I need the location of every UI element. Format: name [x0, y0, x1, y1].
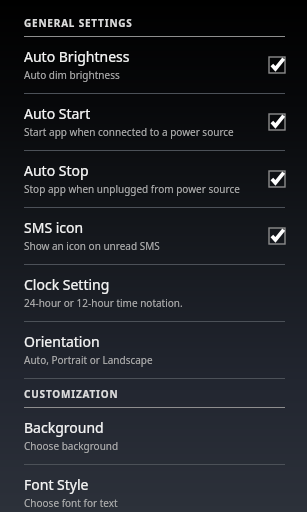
button[interactable]: Background [0, 408, 307, 465]
staticText: 24-hour or 12-hour time notation. [24, 296, 183, 310]
button[interactable]: Clock Setting [0, 265, 307, 322]
staticText: Choose font for text [24, 496, 118, 510]
staticText: Auto dim brightness [24, 68, 120, 82]
staticText: Show an icon on unread SMS [24, 239, 160, 253]
staticText: Choose background [24, 439, 119, 453]
staticText: Background [24, 418, 104, 437]
other: Toggle setting [268, 56, 286, 74]
other: Toggle setting [268, 227, 286, 245]
button[interactable]: Font Style [0, 465, 307, 512]
other: Toggle setting [268, 113, 286, 131]
button[interactable]: Auto Start [0, 94, 307, 151]
staticText: Auto Brightness [24, 47, 130, 66]
staticText: Clock Setting [24, 275, 110, 294]
staticText: SMS icon [24, 218, 84, 237]
button[interactable]: Orientation [0, 322, 307, 379]
other: Toggle setting [268, 170, 286, 188]
staticText: GENERAL SETTINGS [24, 16, 133, 30]
staticText: Start app when connected to a power sour… [24, 125, 234, 139]
staticText: Orientation [24, 332, 100, 351]
staticText: Auto, Portrait or Landscape [24, 353, 153, 367]
staticText: Auto Stop [24, 161, 89, 180]
staticText: Font Style [24, 475, 89, 494]
staticText: CUSTOMIZATION [24, 387, 119, 401]
staticText: Auto Start [24, 104, 91, 123]
staticText: Stop app when unplugged from power sourc… [24, 182, 240, 196]
button[interactable]: SMS icon [0, 208, 307, 265]
button[interactable]: Auto Stop [0, 151, 307, 208]
button[interactable]: Auto Brightness [0, 37, 307, 94]
